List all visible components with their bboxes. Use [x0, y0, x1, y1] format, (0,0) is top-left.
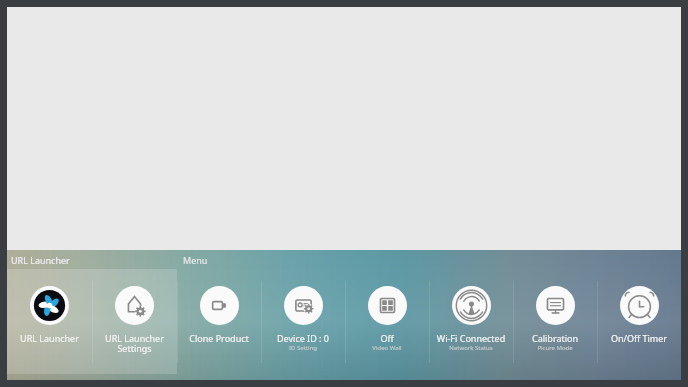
button[interactable]: URL Launcher: [7, 269, 92, 374]
staticText: Clone Product: [177, 332, 261, 344]
button[interactable]: URL Launcher Settings: [92, 269, 177, 374]
staticText: Menu: [183, 254, 208, 266]
staticText: URL Launcher: [7, 332, 92, 344]
staticText: Network Status: [429, 344, 513, 352]
staticText: Wi-Fi Connected: [429, 332, 513, 344]
staticText: URL Launcher Settings: [92, 332, 177, 355]
button[interactable]: Off: [345, 269, 429, 374]
staticText: On/Off Timer: [597, 332, 681, 344]
button[interactable]: Wi-Fi Connected: [429, 269, 513, 374]
staticText: Video Wall: [345, 344, 429, 352]
button[interactable]: Device ID : 0: [261, 269, 345, 374]
staticText: URL Launcher: [11, 254, 70, 266]
staticText: Calibration: [513, 332, 597, 344]
staticText: Picure Mode: [513, 344, 597, 352]
button[interactable]: Clone Product: [177, 269, 261, 374]
staticText: Device ID : 0: [261, 332, 345, 344]
staticText: ID Setting: [261, 344, 345, 352]
button[interactable]: On/Off Timer: [597, 269, 681, 374]
button[interactable]: Calibration: [513, 269, 597, 374]
staticText: Off: [345, 332, 429, 344]
